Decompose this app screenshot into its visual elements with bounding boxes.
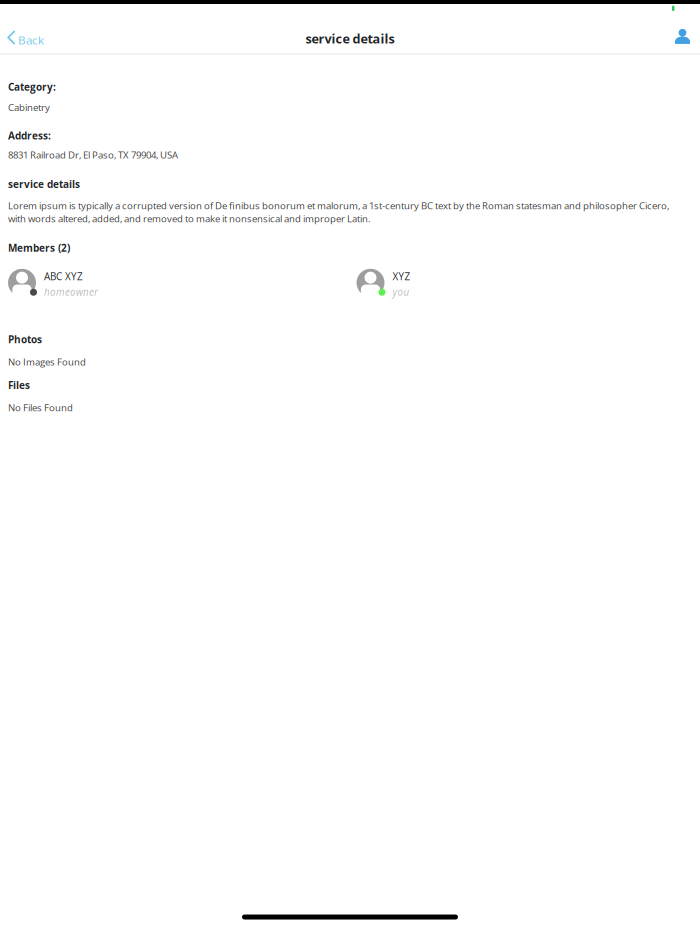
staticText: Back bbox=[18, 32, 44, 48]
button[interactable]: Back bbox=[0, 4, 44, 53]
staticText: Address: bbox=[8, 129, 51, 142]
staticText: service details bbox=[8, 177, 80, 191]
button[interactable]: ABC XYZ bbox=[8, 269, 356, 299]
staticText: Category: bbox=[8, 80, 56, 94]
staticText: service details bbox=[305, 30, 394, 47]
staticText: XYZ bbox=[392, 270, 410, 283]
button[interactable]: XYZ bbox=[356, 269, 688, 299]
staticText: Files bbox=[8, 378, 30, 392]
staticText: Members (2) bbox=[8, 241, 70, 255]
staticText: you bbox=[392, 285, 409, 299]
staticText: Cabinetry bbox=[8, 101, 50, 114]
staticText: 8831 Railroad Dr, El Paso, TX 79904, USA bbox=[8, 148, 178, 161]
staticText: Lorem ipsum is typically a corrupted ver… bbox=[8, 199, 669, 225]
staticText: Photos bbox=[8, 333, 42, 346]
staticText: homeowner bbox=[44, 285, 98, 299]
staticText: No Files Found bbox=[8, 401, 73, 414]
button[interactable]: Account bbox=[675, 4, 700, 49]
staticText: ABC XYZ bbox=[44, 270, 83, 283]
staticText: No Images Found bbox=[8, 355, 86, 368]
